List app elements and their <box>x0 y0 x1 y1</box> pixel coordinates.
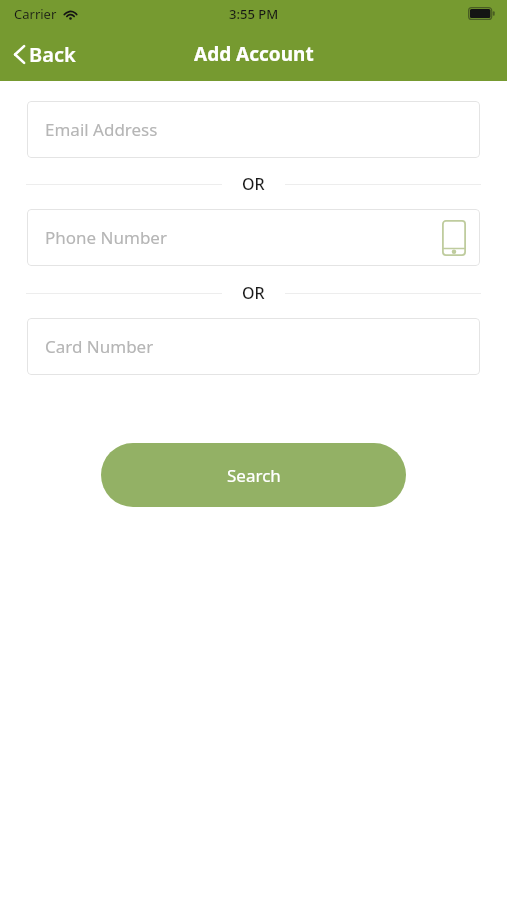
button[interactable]: Phone Number <box>27 209 480 266</box>
staticText: OR <box>242 282 265 304</box>
button[interactable]: Search <box>101 443 406 507</box>
staticText: Card Number <box>45 335 154 358</box>
staticText: Back <box>29 41 76 68</box>
staticText: Phone Number <box>45 226 167 249</box>
button[interactable]: Back <box>0 35 88 74</box>
staticText: Add Account <box>194 41 314 67</box>
other: Use phone number <box>442 220 466 256</box>
button[interactable]: Card Number <box>27 318 480 375</box>
staticText: 3:55 PM <box>229 5 279 23</box>
staticText: Email Address <box>45 118 158 141</box>
button[interactable]: Email Address <box>27 101 480 158</box>
staticText: Carrier <box>14 5 57 23</box>
staticText: OR <box>242 173 265 195</box>
staticText: Search <box>227 464 281 487</box>
